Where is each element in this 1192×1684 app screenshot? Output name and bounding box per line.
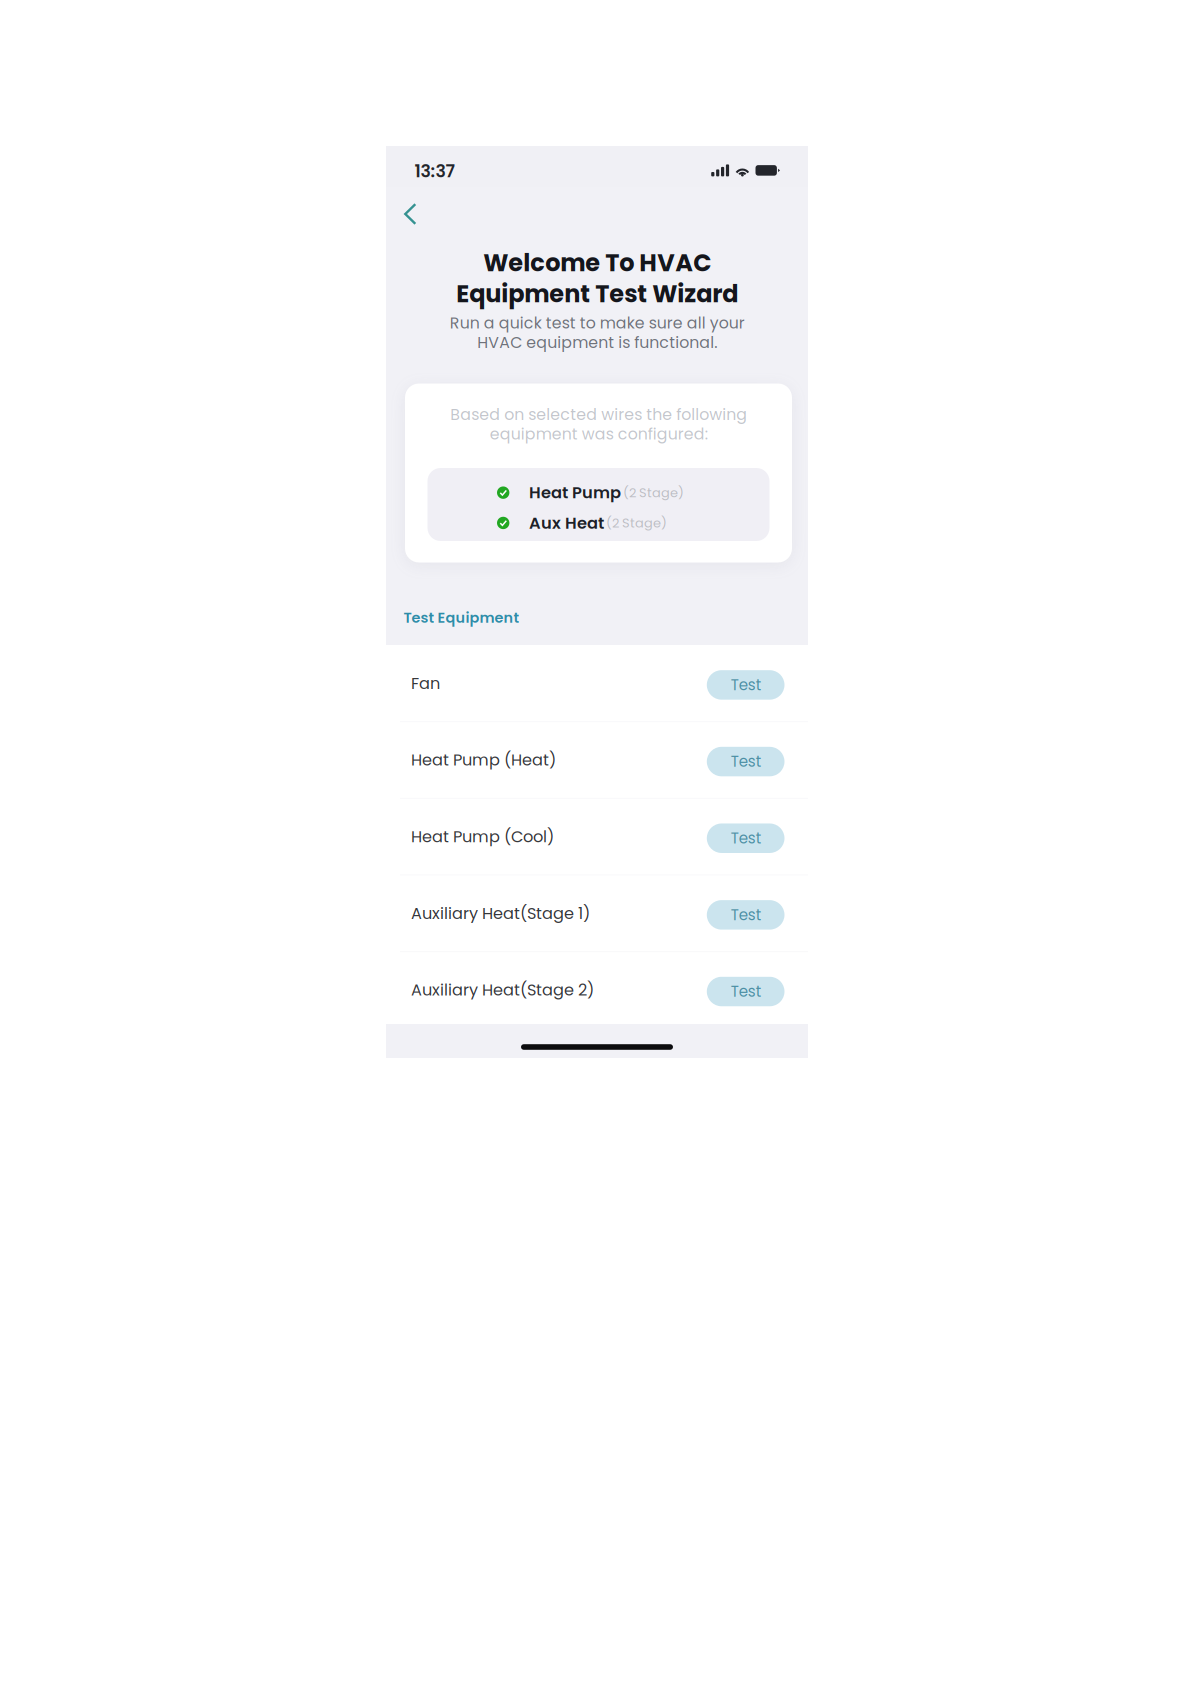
staticText: Test (731, 981, 761, 1002)
staticText: Run a quick test to make sure all your H… (449, 312, 744, 354)
staticText: Test (731, 904, 761, 925)
staticText: Auxiliary Heat(Stage 1) (411, 902, 590, 925)
staticText: Heat Pump (529, 481, 621, 504)
button[interactable]: Test (707, 823, 784, 853)
staticText: Aux Heat (529, 512, 604, 534)
staticText: Test (731, 828, 761, 849)
button[interactable]: Test (707, 900, 784, 930)
staticText: (2 Stage) (623, 484, 684, 502)
staticText: Welcome To HVAC Equipment Test Wizard (456, 246, 738, 311)
staticText: Heat Pump (Cool) (411, 825, 554, 848)
button[interactable]: Test (707, 747, 784, 776)
staticText: Test (731, 674, 761, 695)
button[interactable]: Test (707, 977, 784, 1006)
staticText: Test Equipment (403, 608, 519, 628)
staticText: (2 Stage) (606, 514, 667, 532)
staticText: Based on selected wires the following eq… (450, 404, 747, 445)
button[interactable]: Test (707, 670, 784, 700)
staticText: 13:37 (414, 159, 454, 183)
staticText: Test (731, 751, 761, 772)
staticText: Fan (411, 672, 440, 695)
button[interactable]: Test Equipment (403, 608, 519, 628)
button[interactable]: Back (390, 194, 430, 234)
staticText: Auxiliary Heat(Stage 2) (411, 979, 594, 1001)
staticText: Heat Pump (Heat) (411, 749, 556, 771)
